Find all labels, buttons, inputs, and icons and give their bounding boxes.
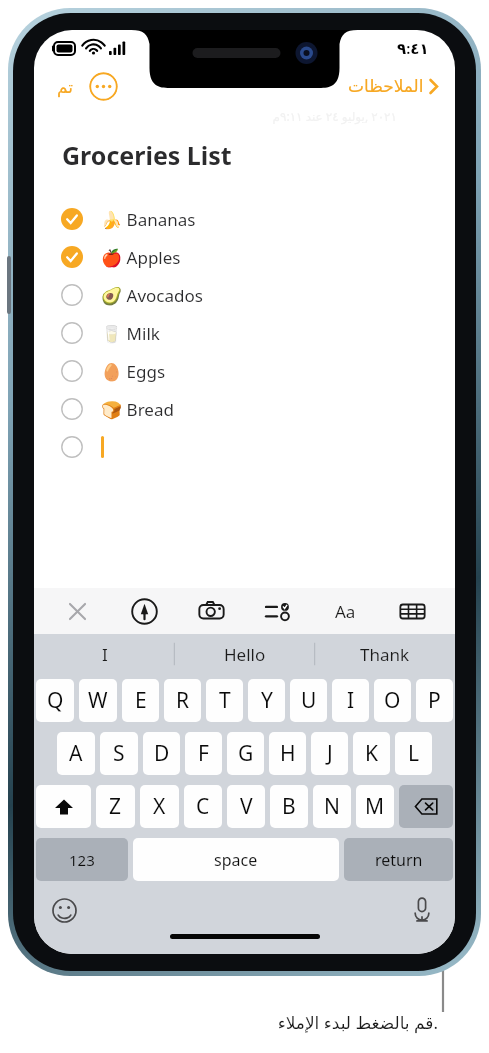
button[interactable]: Camera <box>187 589 235 633</box>
staticText: J <box>327 739 333 768</box>
staticText: Hello <box>224 643 266 666</box>
staticText: قم بالضغط لبدء الإملاء. <box>118 1011 438 1034</box>
staticText: O <box>384 686 401 715</box>
staticText: Groceries List <box>62 138 232 172</box>
button[interactable]: Checklist <box>254 589 302 633</box>
button[interactable]: B <box>270 785 308 828</box>
staticText: Thank <box>360 643 410 666</box>
button[interactable]: Unchecked item <box>34 428 455 466</box>
other: Unchecked item <box>61 322 83 344</box>
button[interactable]: Table <box>388 589 436 633</box>
other: Unchecked item <box>61 284 83 306</box>
staticText: Aa <box>335 600 356 623</box>
button[interactable]: S <box>100 732 138 775</box>
staticText: 🍞 Bread <box>101 398 174 421</box>
button[interactable]: Hello <box>175 634 315 674</box>
button[interactable]: I <box>34 634 175 674</box>
button[interactable]: Z <box>96 785 135 828</box>
staticText: Z <box>109 792 122 821</box>
staticText: I <box>347 686 355 715</box>
staticText: H <box>280 739 296 768</box>
staticText: B <box>282 792 296 821</box>
button[interactable]: Backspace <box>399 785 453 828</box>
button[interactable]: return <box>344 838 453 881</box>
button[interactable]: K <box>353 732 390 775</box>
button[interactable]: تم <box>52 73 79 101</box>
staticText: 123 <box>69 850 95 870</box>
button[interactable]: 123 <box>36 838 128 881</box>
button[interactable]: T <box>206 679 243 722</box>
button[interactable]: Q <box>36 679 74 722</box>
button[interactable]: C <box>184 785 222 828</box>
button[interactable]: P <box>416 679 453 722</box>
other: Checked item <box>61 246 83 268</box>
staticText: K <box>365 739 378 768</box>
other: Unchecked item <box>61 398 83 420</box>
button[interactable]: M <box>356 785 394 828</box>
staticText: S <box>113 739 125 768</box>
button[interactable]: الملاحظات <box>344 72 443 100</box>
button[interactable]: D <box>143 732 180 775</box>
button[interactable]: N <box>313 785 351 828</box>
button[interactable]: Unchecked item <box>34 276 455 314</box>
staticText: return <box>375 849 423 871</box>
staticText: C <box>196 792 210 821</box>
button[interactable]: space <box>133 838 339 881</box>
staticText: T <box>219 686 231 715</box>
button[interactable]: Y <box>248 679 285 722</box>
staticText: R <box>176 686 190 715</box>
button[interactable]: Close <box>53 589 101 633</box>
button[interactable]: H <box>269 732 306 775</box>
button[interactable]: Shift <box>36 785 91 828</box>
staticText: Y <box>261 686 273 715</box>
staticText: L <box>408 739 420 768</box>
button[interactable]: Unchecked item <box>34 352 455 390</box>
button[interactable]: More options <box>89 72 118 101</box>
staticText: M <box>365 792 385 821</box>
button[interactable]: R <box>164 679 201 722</box>
button[interactable]: E <box>122 679 159 722</box>
staticText: 🍌 Bananas <box>101 208 196 231</box>
button[interactable]: V <box>227 785 265 828</box>
staticText: space <box>214 849 258 871</box>
staticText: I <box>102 643 108 666</box>
button[interactable]: Checked item <box>34 238 455 276</box>
staticText: 🥚 Eggs <box>101 360 166 383</box>
other: Unchecked item <box>61 360 83 382</box>
button[interactable]: Unchecked item <box>34 314 455 352</box>
staticText: ٩:٤١ <box>397 38 429 58</box>
button[interactable]: I <box>332 679 369 722</box>
staticText: X <box>153 792 166 821</box>
button[interactable]: L <box>395 732 432 775</box>
button[interactable]: U <box>290 679 327 722</box>
button[interactable]: J <box>311 732 348 775</box>
button[interactable]: W <box>79 679 117 722</box>
button[interactable]: Markup <box>120 589 168 633</box>
staticText: U <box>301 686 317 715</box>
button[interactable]: A <box>57 732 95 775</box>
button[interactable]: Thank <box>315 634 455 674</box>
staticText: V <box>240 792 253 821</box>
other: Unchecked item <box>61 436 83 458</box>
staticText: G <box>238 739 254 768</box>
button[interactable]: Checked item <box>34 200 455 238</box>
button[interactable]: X <box>140 785 179 828</box>
button[interactable]: Text format <box>321 589 369 633</box>
staticText: W <box>88 686 108 715</box>
button[interactable]: O <box>374 679 411 722</box>
staticText: الملاحظات <box>348 76 424 96</box>
staticText: F <box>198 739 209 768</box>
staticText: Q <box>47 686 64 715</box>
button[interactable]: Dictate <box>405 893 439 927</box>
button[interactable]: Unchecked item <box>34 390 455 428</box>
staticText: A <box>69 739 83 768</box>
staticText: D <box>154 739 170 768</box>
staticText: 🥛 Milk <box>101 322 160 345</box>
staticText: 🥑 Avocados <box>101 284 203 307</box>
button[interactable]: Emoji keyboard <box>48 894 80 926</box>
button[interactable]: G <box>227 732 264 775</box>
staticText: P <box>428 686 441 715</box>
staticText: 🍎 Apples <box>101 246 181 269</box>
button[interactable]: F <box>185 732 222 775</box>
